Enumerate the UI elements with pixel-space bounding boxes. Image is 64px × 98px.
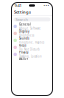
staticText: Settings [14, 9, 31, 15]
staticText: Search [15, 17, 27, 22]
button[interactable]: Display [11, 30, 52, 37]
button[interactable]: General [11, 23, 52, 30]
staticText: About, Software [19, 27, 41, 30]
staticText: Focus [19, 44, 26, 47]
button[interactable]: Wallet [11, 58, 52, 65]
staticText: General [19, 23, 31, 26]
staticText: Do Not Disturb [19, 48, 40, 51]
staticText: Brightness [19, 34, 34, 37]
staticText: Wallet [19, 58, 28, 61]
button[interactable]: Focus [11, 44, 52, 51]
staticText: Privacy [19, 51, 28, 54]
staticText: ••• [43, 3, 49, 8]
staticText: Sounds [19, 37, 29, 40]
button[interactable]: Privacy [11, 51, 52, 58]
staticText: 9:41 [14, 3, 21, 8]
button[interactable]: Sounds [11, 37, 52, 44]
staticText: Display [19, 30, 29, 33]
staticText: Tracking, Location [19, 55, 42, 58]
staticText: Ringtone, Haptics [19, 41, 44, 44]
button[interactable]: Safari [11, 86, 52, 93]
